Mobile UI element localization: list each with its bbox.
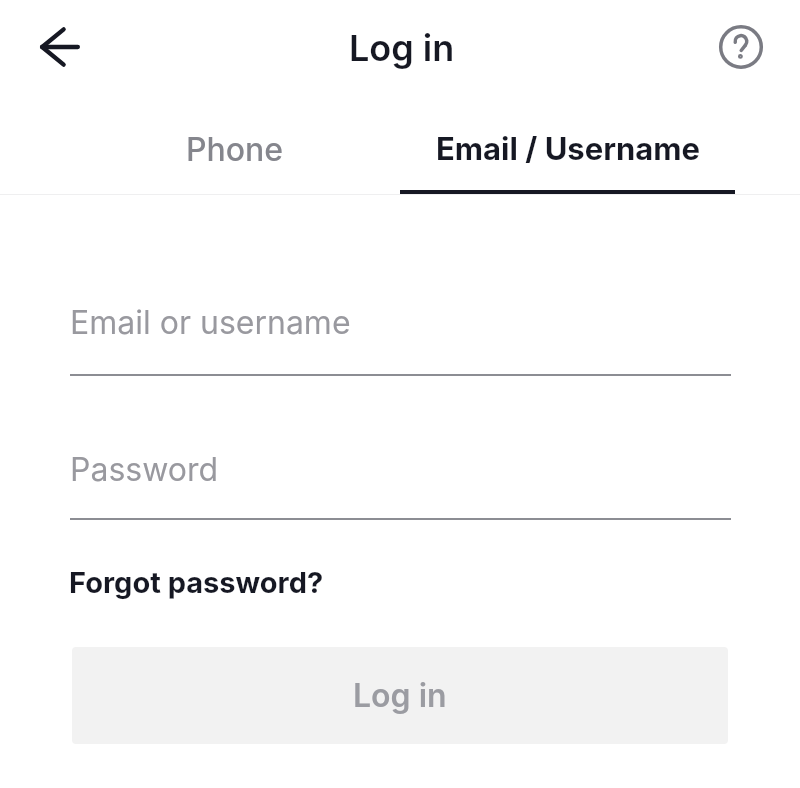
staticText: Email / Username <box>436 130 701 168</box>
staticText: Email or username <box>70 303 351 342</box>
staticText: Forgot password? <box>69 565 324 600</box>
button[interactable]: Phone <box>69 102 401 196</box>
button[interactable]: Back <box>26 13 94 81</box>
button[interactable]: Forgot password? <box>69 565 324 600</box>
staticText: Log in <box>349 26 455 70</box>
button[interactable]: Log in <box>72 647 728 744</box>
staticText: Password <box>70 450 219 489</box>
staticText: Phone <box>186 130 284 169</box>
staticText: Log in <box>353 676 447 715</box>
button[interactable]: Help <box>712 18 769 75</box>
button[interactable]: Email / Username <box>401 102 736 196</box>
